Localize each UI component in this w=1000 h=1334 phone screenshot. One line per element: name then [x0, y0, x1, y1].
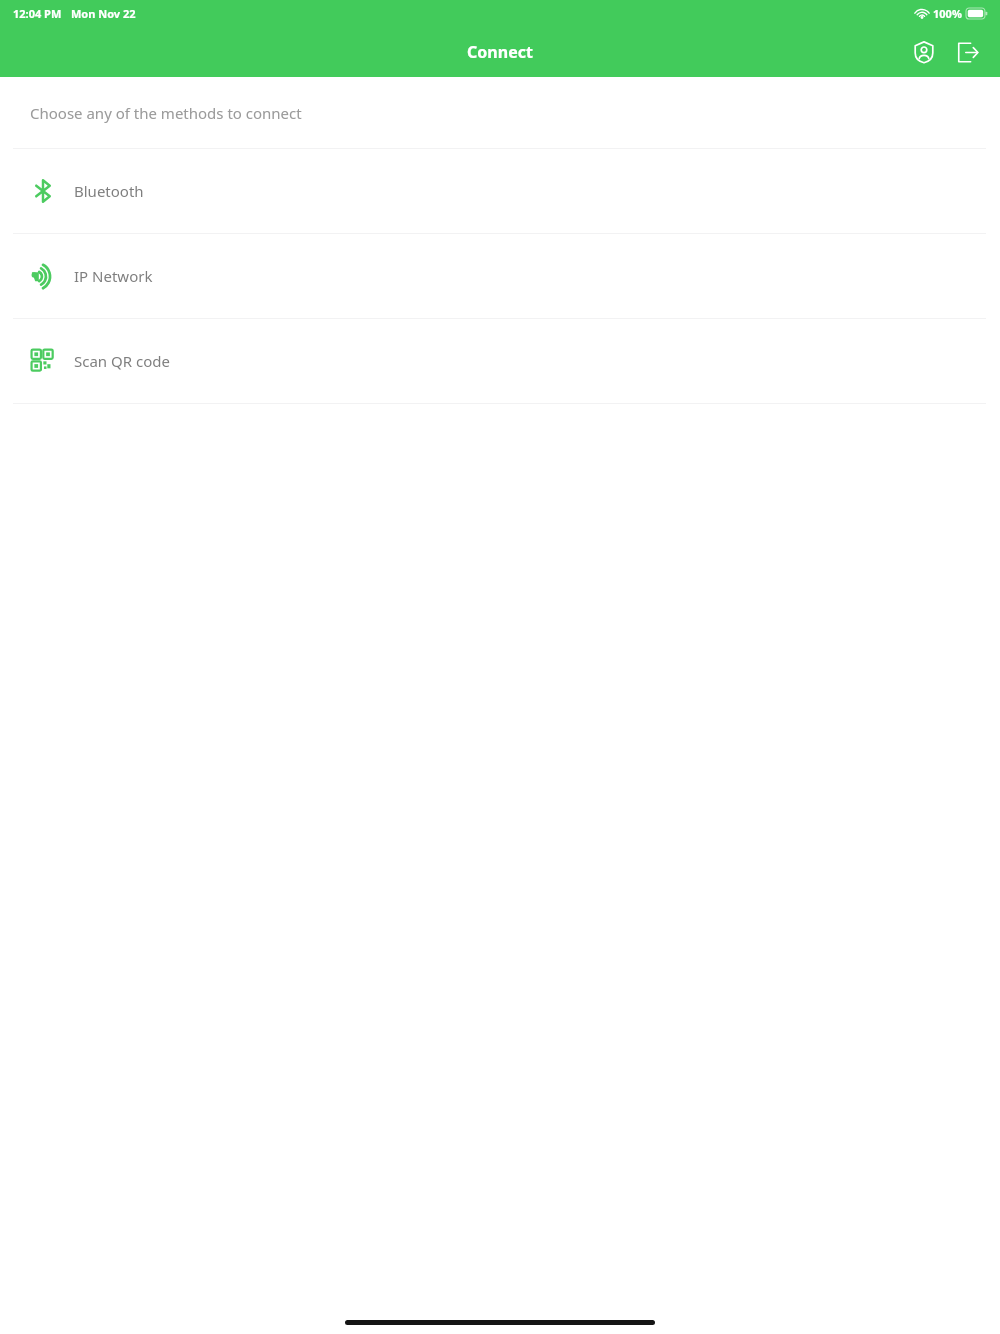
button[interactable]: Scan QR code: [0, 319, 1000, 403]
staticText: 100%: [933, 6, 962, 21]
staticText: 12:04 PM: [13, 6, 62, 21]
staticText: IP Network: [74, 266, 153, 286]
staticText: Bluetooth: [74, 181, 144, 201]
button[interactable]: Account security: [902, 30, 946, 74]
button[interactable]: IP Network: [0, 234, 1000, 318]
staticText: Choose any of the methods to connect: [30, 103, 302, 123]
staticText: Connect: [467, 41, 533, 63]
staticText: Mon Nov 22: [71, 6, 136, 21]
button[interactable]: Bluetooth: [0, 149, 1000, 233]
staticText: Scan QR code: [74, 351, 170, 371]
button[interactable]: Log out: [946, 30, 990, 74]
